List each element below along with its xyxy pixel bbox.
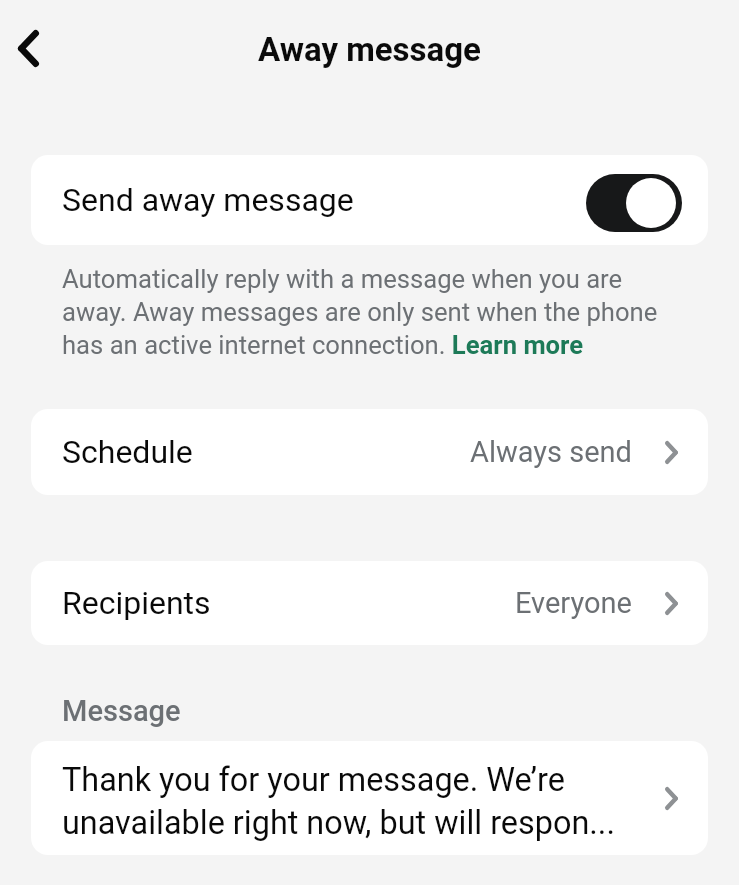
button[interactable]: Send away message toggle xyxy=(586,174,682,232)
button[interactable]: Thank you for your message. We’re unavai… xyxy=(31,741,708,855)
staticText: Automatically reply with a message when … xyxy=(62,264,658,361)
button[interactable]: Send away message xyxy=(31,155,708,245)
button[interactable]: Learn more xyxy=(453,331,584,359)
staticText: Thank you for your message. We’re unavai… xyxy=(62,761,653,842)
button[interactable]: Back xyxy=(0,20,56,76)
button[interactable]: Recipients xyxy=(31,561,708,645)
staticText: Send away message xyxy=(62,181,354,219)
staticText: Away message xyxy=(258,30,481,69)
staticText: Everyone xyxy=(515,586,632,620)
button[interactable]: Schedule xyxy=(31,409,708,495)
staticText: Always send xyxy=(470,435,632,469)
staticText: Recipients xyxy=(62,584,211,622)
staticText: Message xyxy=(62,694,181,728)
staticText: Schedule xyxy=(62,433,193,471)
